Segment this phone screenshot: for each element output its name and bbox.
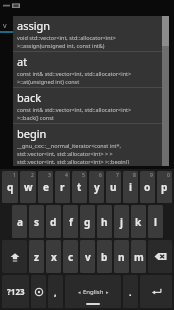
staticText: const int& std::vector<int, std::allocat… — [17, 106, 132, 113]
staticText: begin — [17, 126, 47, 141]
button[interactable]: 3 — [38, 171, 53, 203]
button[interactable]: 7 — [106, 171, 121, 203]
staticText: const int& std::vector<int, std::allocat… — [17, 70, 132, 77]
button[interactable]: x — [46, 240, 61, 273]
staticText: f — [69, 215, 73, 229]
staticText: assign — [17, 18, 51, 33]
staticText: 5 — [82, 172, 85, 179]
button[interactable]: Shift — [2, 240, 27, 273]
button[interactable]: k — [131, 205, 146, 238]
staticText: z — [34, 250, 39, 264]
button[interactable]: 6 — [89, 171, 104, 203]
button[interactable]: v — [80, 240, 95, 273]
button[interactable]: ◂ — [65, 275, 121, 308]
staticText: a — [17, 215, 23, 229]
staticText: m — [134, 250, 144, 264]
button[interactable]: Settings — [31, 275, 46, 308]
button[interactable]: Enter — [140, 275, 172, 308]
staticText: q — [7, 180, 14, 194]
staticText: t — [77, 180, 82, 194]
staticText: 7 — [116, 172, 119, 179]
staticText: d — [50, 215, 57, 229]
button[interactable]: f — [63, 205, 78, 238]
button[interactable]: . — [123, 275, 138, 308]
staticText: ◂ — [78, 289, 81, 295]
button[interactable]: 5 — [72, 171, 87, 203]
staticText: n — [118, 250, 125, 264]
staticText: c — [68, 250, 74, 264]
staticText: >::assign(unsigned int, const int&) — [17, 42, 105, 49]
button[interactable]: l — [148, 205, 163, 238]
staticText: k — [135, 215, 142, 229]
staticText: ?123 — [7, 286, 25, 297]
staticText: ▸ — [106, 289, 109, 295]
staticText: h — [101, 215, 108, 229]
staticText: 4 — [65, 172, 68, 179]
button[interactable]: d — [46, 205, 61, 238]
staticText: b — [101, 250, 108, 264]
staticText: at — [17, 54, 28, 69]
staticText: 0 — [167, 172, 170, 179]
staticText: g — [84, 215, 91, 229]
staticText: 9 — [150, 172, 153, 179]
button[interactable]: , — [48, 275, 63, 308]
staticText: r — [60, 180, 65, 194]
staticText: 3 — [48, 172, 51, 179]
button[interactable]: h — [97, 205, 112, 238]
button[interactable]: 1 — [2, 171, 18, 203]
button[interactable]: 9 — [140, 171, 155, 203]
button[interactable]: ?123 — [2, 275, 29, 308]
button[interactable]: g — [80, 205, 95, 238]
staticText: w — [24, 180, 33, 194]
staticText: l — [154, 215, 157, 229]
staticText: English — [83, 288, 104, 296]
button[interactable]: z — [29, 240, 44, 273]
button[interactable]: at — [13, 52, 162, 87]
staticText: v — [85, 250, 91, 264]
button[interactable]: back — [13, 88, 162, 123]
staticText: 8 — [133, 172, 136, 179]
staticText: __gnu_cxx::__normal_iterator<const int*, — [17, 142, 122, 149]
staticText: x — [51, 250, 57, 264]
button[interactable]: 2 — [20, 171, 36, 203]
staticText: y — [94, 180, 100, 194]
button[interactable]: n — [114, 240, 129, 273]
staticText: v — [3, 21, 7, 31]
staticText: 1 — [13, 172, 16, 179]
button[interactable]: assign — [13, 16, 162, 51]
button[interactable]: 0 — [157, 171, 172, 203]
staticText: u — [110, 180, 117, 194]
staticText: e — [43, 180, 49, 194]
staticText: >::at(unsigned int) const — [17, 78, 80, 85]
staticText: p — [161, 180, 168, 194]
staticText: back — [17, 90, 42, 105]
button[interactable]: m — [131, 240, 146, 273]
button[interactable]: b — [97, 240, 112, 273]
button[interactable]: a — [12, 205, 27, 238]
button[interactable]: Delete — [148, 240, 172, 273]
staticText: i — [129, 180, 132, 194]
staticText: j — [120, 215, 123, 229]
button[interactable]: s — [29, 205, 44, 238]
staticText: void std::vector<int, std::allocator<int… — [17, 34, 116, 41]
button[interactable]: 8 — [123, 171, 138, 203]
staticText: , — [54, 286, 57, 298]
button[interactable]: 4 — [55, 171, 70, 203]
staticText: o — [144, 180, 151, 194]
staticText: 6 — [99, 172, 102, 179]
staticText: std::vector<int, std::allocator<int> >::… — [17, 158, 130, 164]
staticText: 2 — [31, 172, 34, 179]
staticText: std::vector<int, std::allocator<int> > > — [17, 150, 113, 157]
button[interactable]: c — [63, 240, 78, 273]
button[interactable]: j — [114, 205, 129, 238]
button[interactable]: begin — [13, 124, 162, 166]
staticText: . — [129, 286, 132, 298]
staticText: s — [34, 215, 40, 229]
staticText: >::back() const — [17, 114, 54, 121]
